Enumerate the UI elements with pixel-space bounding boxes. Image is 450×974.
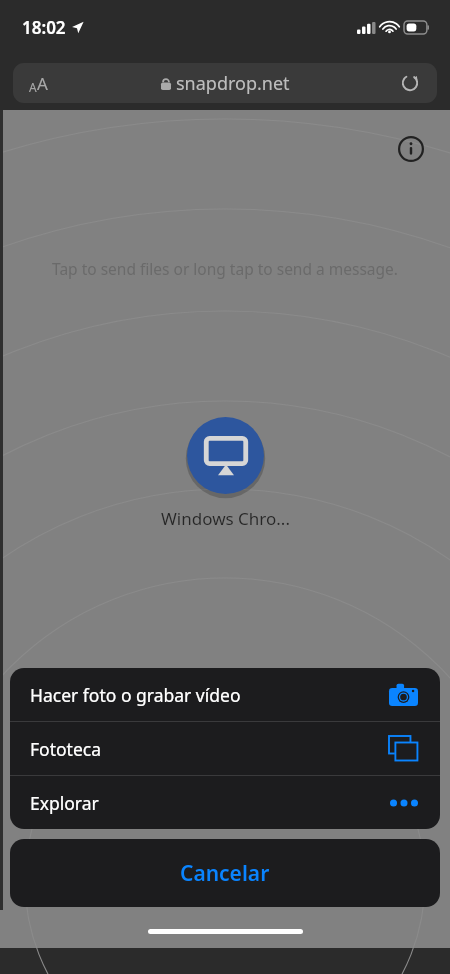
button[interactable]: Hacer foto o grabar vídeo	[10, 668, 440, 721]
button[interactable]: Windows Chro...	[161, 415, 290, 530]
staticText: 18:02	[22, 16, 66, 39]
staticText: Windows Chro...	[161, 507, 290, 530]
staticText: A	[37, 72, 48, 95]
staticText: Tap to send files or long tap to send a …	[52, 258, 398, 279]
staticText: Hacer foto o grabar vídeo	[30, 683, 241, 707]
button[interactable]: A	[13, 63, 437, 103]
button[interactable]: Reload	[395, 68, 425, 98]
button[interactable]: Fototeca	[10, 722, 440, 775]
staticText: Cancelar	[180, 859, 270, 888]
staticText: snapdrop.net	[176, 71, 290, 96]
button[interactable]: Info	[394, 132, 428, 166]
button[interactable]: Explorar	[10, 776, 440, 829]
staticText: Explorar	[30, 791, 99, 815]
staticText: A	[29, 79, 37, 95]
staticText: Fototeca	[30, 737, 101, 761]
button[interactable]: Cancelar	[10, 839, 440, 907]
